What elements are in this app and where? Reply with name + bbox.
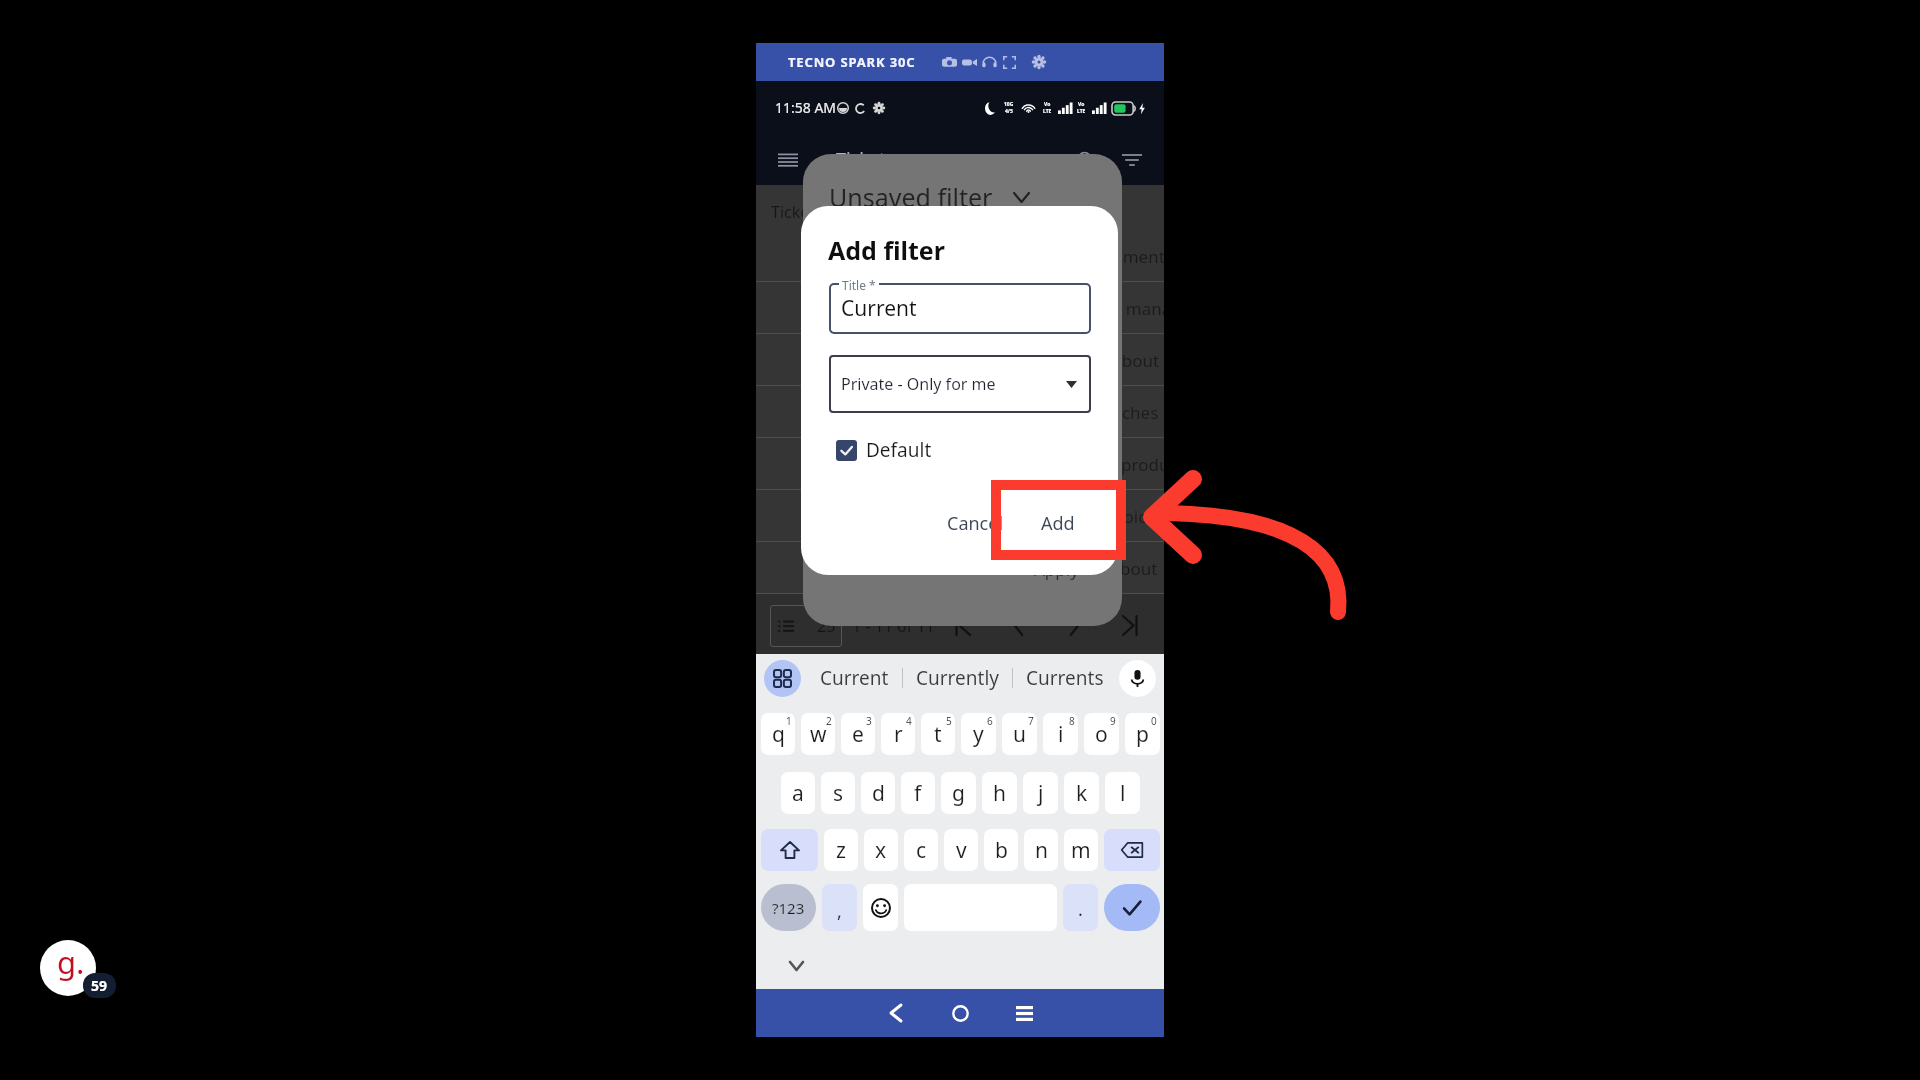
- staticText: Add: [1041, 511, 1075, 536]
- staticText: p: [1136, 720, 1149, 749]
- staticText: q: [772, 720, 785, 749]
- button[interactable]: 25: [770, 605, 842, 647]
- button[interactable]: j: [1023, 772, 1058, 814]
- staticText: 8: [1069, 714, 1075, 728]
- button[interactable]: l: [1105, 772, 1140, 814]
- button[interactable]: h: [982, 772, 1017, 814]
- staticText: Default: [866, 437, 932, 463]
- button[interactable]: Page nav: [1102, 606, 1158, 644]
- staticText: Current: [841, 294, 917, 323]
- button[interactable]: Emoji: [863, 884, 898, 931]
- button[interactable]: Keyboard menu: [764, 660, 801, 697]
- button[interactable]: f: [901, 772, 935, 814]
- staticText: n: [1035, 836, 1048, 865]
- button[interactable]: Shift: [761, 829, 818, 871]
- staticText: j: [1038, 779, 1044, 808]
- staticText: t: [934, 720, 942, 749]
- button[interactable]: q: [761, 713, 795, 755]
- staticText: w: [810, 720, 827, 749]
- staticText: TECNO SPARK 30C: [788, 53, 916, 71]
- button[interactable]: Enter: [1104, 884, 1160, 931]
- staticText: Client management m: [1007, 245, 1164, 268]
- staticText: a: [792, 779, 804, 808]
- button[interactable]: Current: [807, 659, 902, 697]
- staticText: Private - Only for me: [841, 373, 996, 395]
- staticText: Apply: [1034, 558, 1079, 581]
- staticText: Vo: [1044, 101, 1051, 108]
- staticText: g.: [57, 941, 85, 983]
- staticText: ?123: [772, 898, 805, 918]
- staticText: 7: [1028, 714, 1034, 728]
- staticText: 3: [866, 714, 872, 728]
- button[interactable]: ,: [822, 884, 857, 931]
- button[interactable]: b: [984, 829, 1018, 871]
- staticText: Vo: [1078, 101, 1085, 108]
- button[interactable]: e: [841, 713, 875, 755]
- button[interactable]: i: [1043, 713, 1078, 755]
- staticText: l: [1120, 779, 1126, 808]
- button[interactable]: r: [881, 713, 915, 755]
- staticText: Current: [820, 665, 889, 691]
- button[interactable]: t: [921, 713, 955, 755]
- staticText: m: [1071, 836, 1091, 865]
- staticText: Final product: [1079, 453, 1164, 476]
- staticText: Title *: [842, 277, 876, 293]
- staticText: h: [993, 779, 1006, 808]
- staticText: 25: [817, 615, 836, 637]
- button[interactable]: Page nav: [990, 606, 1046, 644]
- button[interactable]: Cancel: [937, 504, 1014, 543]
- staticText: Currents: [1026, 665, 1104, 691]
- button[interactable]: Page nav: [1046, 606, 1102, 644]
- button[interactable]: y: [961, 713, 996, 755]
- button[interactable]: Menu: [774, 146, 802, 174]
- button[interactable]: Filter: [1118, 146, 1146, 174]
- staticText: z: [836, 836, 846, 865]
- button[interactable]: Currents: [1013, 659, 1117, 697]
- button[interactable]: Add: [1031, 504, 1085, 543]
- button[interactable]: o: [1084, 713, 1119, 755]
- staticText: 11:58 AM: [775, 98, 837, 117]
- button[interactable]: c: [904, 829, 938, 871]
- button[interactable]: Private - Only for me: [829, 355, 1091, 413]
- staticText: g: [952, 779, 965, 808]
- button[interactable]: Page nav: [934, 606, 990, 644]
- button[interactable]: z: [824, 829, 858, 871]
- staticText: 4/5: [1005, 108, 1013, 115]
- staticText: r: [894, 720, 903, 749]
- staticText: y: [973, 720, 984, 749]
- button[interactable]: Voice input: [1119, 660, 1156, 697]
- button[interactable]: g: [941, 772, 976, 814]
- staticText: 0: [1151, 714, 1157, 728]
- button[interactable]: Hide keyboard: [773, 953, 819, 979]
- staticText: ,: [837, 899, 842, 924]
- button[interactable]: Default: [831, 432, 940, 468]
- staticText: s: [833, 779, 844, 808]
- button[interactable]: n: [1024, 829, 1058, 871]
- staticText: Tickets: [836, 147, 895, 172]
- button[interactable]: ?123: [761, 884, 816, 931]
- button[interactable]: Recents: [996, 989, 1052, 1037]
- staticText: Cancel: [947, 511, 1004, 536]
- button[interactable]: w: [801, 713, 835, 755]
- button[interactable]: Currently: [903, 659, 1012, 697]
- button[interactable]: .: [1063, 884, 1098, 931]
- button[interactable]: x: [864, 829, 898, 871]
- button[interactable]: Back: [868, 989, 924, 1037]
- button[interactable]: a: [781, 772, 815, 814]
- staticText: i: [1058, 720, 1064, 749]
- staticText: e: [852, 720, 864, 749]
- staticText: Currently: [916, 665, 999, 691]
- button[interactable]: Home: [932, 989, 988, 1037]
- button[interactable]: u: [1002, 713, 1037, 755]
- button[interactable]: v: [944, 829, 978, 871]
- button[interactable]: p: [1125, 713, 1160, 755]
- staticText: Question about: [1035, 349, 1160, 372]
- button[interactable]: d: [861, 772, 895, 814]
- staticText: 5: [946, 714, 952, 728]
- button[interactable]: s: [821, 772, 855, 814]
- button[interactable]: m: [1064, 829, 1098, 871]
- button[interactable]: k: [1064, 772, 1099, 814]
- button[interactable]: Backspace: [1104, 829, 1160, 871]
- button[interactable]: Search: [1072, 146, 1100, 174]
